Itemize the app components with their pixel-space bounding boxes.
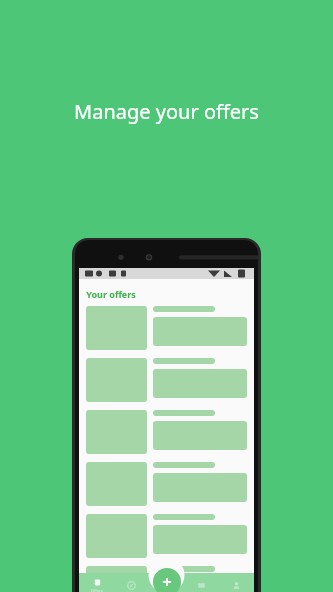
button[interactable] [86, 410, 247, 454]
staticText: Offers [91, 588, 103, 592]
staticText: Manage your offers [74, 98, 259, 125]
button[interactable]: Add offer [153, 568, 181, 592]
button[interactable] [86, 514, 247, 558]
button[interactable] [86, 566, 247, 592]
button[interactable]: Wallet [184, 573, 219, 592]
staticText: Your offers [86, 288, 136, 300]
button[interactable]: Explore [114, 573, 149, 592]
button[interactable] [86, 358, 247, 402]
button[interactable] [86, 462, 247, 506]
button[interactable]: Offers [79, 573, 114, 592]
button[interactable]: Account [219, 573, 254, 592]
button[interactable] [86, 306, 247, 350]
